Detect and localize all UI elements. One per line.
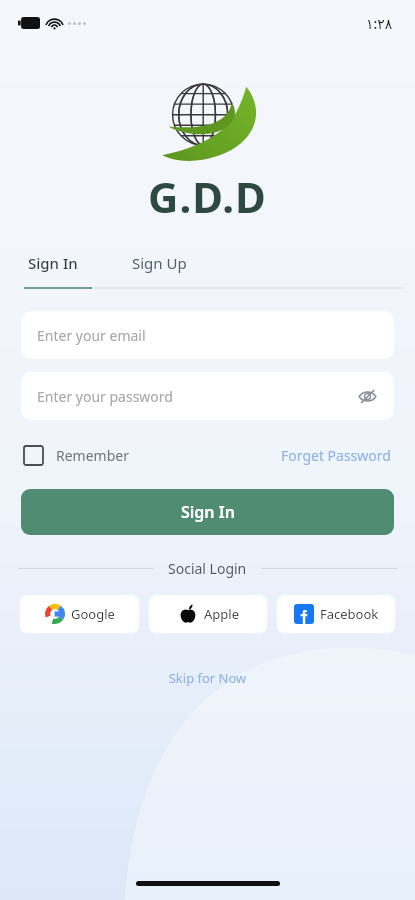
button[interactable]: Facebook: [277, 595, 395, 633]
button[interactable]: Apple: [149, 595, 267, 633]
staticText: ١:٢٨: [366, 14, 393, 33]
button[interactable]: Forget Password: [281, 442, 391, 469]
staticText: Enter your email: [37, 326, 146, 345]
staticText: Forget Password: [281, 446, 391, 465]
button[interactable]: Enter your email: [21, 311, 394, 359]
button[interactable]: Remember: [24, 442, 129, 469]
button[interactable]: Google: [20, 595, 139, 633]
button[interactable]: Show password: [352, 381, 382, 411]
button[interactable]: Sign Up: [128, 247, 191, 279]
staticText: Social Login: [168, 559, 247, 578]
button[interactable]: Enter your password: [21, 372, 394, 420]
staticText: Enter your password: [37, 387, 173, 406]
button[interactable]: Skip for Now: [0, 665, 415, 691]
button[interactable]: Sign In: [24, 247, 82, 279]
staticText: Sign In: [28, 253, 78, 273]
staticText: Remember: [56, 446, 129, 465]
staticText: Sign In: [181, 501, 235, 523]
staticText: G.D.D: [148, 168, 267, 225]
button[interactable]: Sign In: [21, 489, 394, 535]
staticText: Google: [71, 605, 115, 623]
staticText: Facebook: [320, 605, 379, 623]
staticText: Apple: [204, 605, 239, 623]
staticText: Sign Up: [132, 253, 187, 273]
